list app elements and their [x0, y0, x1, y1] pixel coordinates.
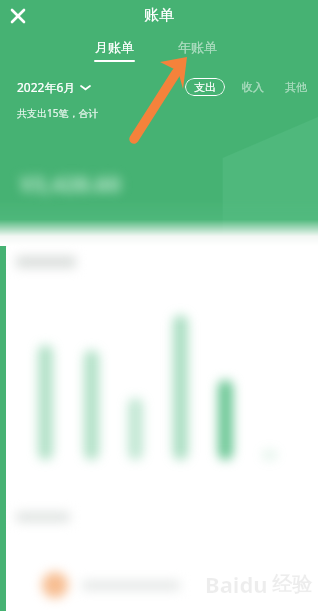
staticText: 年账单 [178, 39, 217, 55]
staticText: 月账单 [95, 39, 134, 55]
button[interactable]: 其他 [285, 80, 307, 94]
button[interactable]: 2022年6月 [17, 79, 90, 95]
button[interactable]: 收入 [242, 80, 264, 94]
staticText: 收入 [242, 80, 264, 94]
staticText: 支出 [194, 80, 216, 94]
staticText: 账单 [144, 6, 174, 25]
staticText: ¥3,428.60 [20, 168, 121, 198]
button[interactable]: 支出 [185, 78, 225, 96]
staticText: 经验 [272, 572, 312, 597]
button[interactable]: 月账单 [94, 39, 135, 62]
button[interactable]: Close [4, 2, 32, 30]
staticText: 2022年6月 [17, 79, 76, 95]
staticText: 其他 [285, 80, 307, 94]
button[interactable]: 年账单 [178, 39, 217, 55]
staticText: Baidu [205, 569, 268, 599]
staticText: 共支出15笔，合计 [17, 106, 99, 120]
